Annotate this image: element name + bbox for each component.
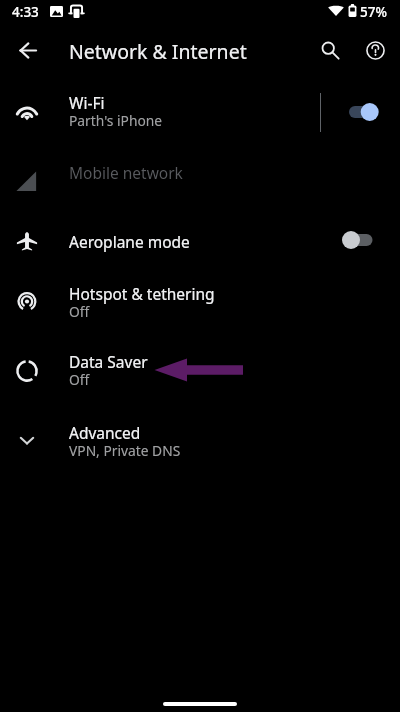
button[interactable]: Data Saver [0,344,400,400]
staticText: Aeroplane mode [69,231,190,252]
staticText: 57% [360,3,387,21]
other: Wi-Fi [15,100,39,124]
staticText: Network & Internet [69,38,247,65]
staticText: Hotspot & tethering [69,283,215,304]
staticText: Parth's iPhone [69,111,163,130]
staticText: Mobile network [69,162,183,183]
button[interactable]: Advanced [0,414,400,470]
other: Mobile network [15,169,39,193]
button[interactable]: Help [353,28,397,72]
staticText: Off [69,302,90,321]
staticText: VPN, Private DNS [69,441,181,460]
other: Advanced [15,428,39,452]
staticText: Wi-Fi [69,92,105,113]
staticText: Off [69,370,90,389]
other: Hotspot and tethering [15,288,39,312]
button[interactable]: Switch on [336,95,384,129]
button[interactable]: Back [6,28,50,72]
other: Aeroplane mode [15,229,39,253]
staticText: Advanced [69,422,141,443]
button[interactable]: Aeroplane mode [0,218,400,266]
button[interactable]: Switch off [336,223,384,257]
button[interactable]: Mobile network [0,148,400,198]
staticText: 4:33 [12,3,39,21]
button[interactable]: Search [308,28,352,72]
other: Data Saver [15,359,39,383]
button[interactable]: Hotspot and tethering [0,274,400,330]
button[interactable]: Wi-Fi [0,84,400,140]
staticText: Data Saver [69,351,148,372]
